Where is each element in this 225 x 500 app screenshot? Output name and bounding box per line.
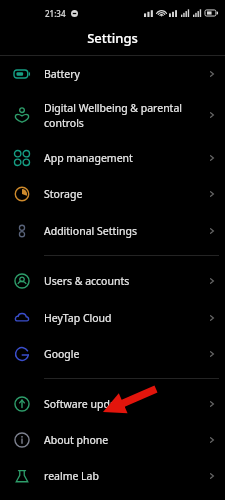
- staticText: Users & accounts: [44, 274, 207, 288]
- staticText: 21:34: [45, 8, 66, 19]
- button[interactable]: Users & accounts: [0, 262, 225, 300]
- button[interactable]: HeyTap Cloud: [0, 300, 225, 336]
- button[interactable]: App management: [0, 139, 225, 176]
- button[interactable]: Battery: [0, 56, 225, 91]
- staticText: Additional Settings: [44, 224, 207, 238]
- staticText: App management: [44, 151, 207, 165]
- staticText: About phone: [44, 433, 207, 447]
- staticText: Software update: [44, 397, 207, 411]
- staticText: Digital Wellbeing & parental controls: [44, 101, 207, 130]
- staticText: Google: [44, 347, 207, 361]
- button[interactable]: Additional Settings: [0, 212, 225, 249]
- button[interactable]: Software update: [0, 385, 225, 422]
- button[interactable]: Digital Wellbeing & parental controls: [0, 91, 225, 139]
- button[interactable]: About phone: [0, 422, 225, 458]
- staticText: Storage: [44, 187, 207, 201]
- staticText: Settings: [87, 29, 138, 47]
- staticText: HeyTap Cloud: [44, 311, 207, 325]
- button[interactable]: Google: [0, 336, 225, 372]
- button[interactable]: realme Lab: [0, 458, 225, 494]
- other: Pointer arrow highlighting About phone: [0, 0, 225, 500]
- staticText: Battery: [44, 67, 207, 81]
- staticText: realme Lab: [44, 469, 207, 483]
- button[interactable]: Storage: [0, 176, 225, 212]
